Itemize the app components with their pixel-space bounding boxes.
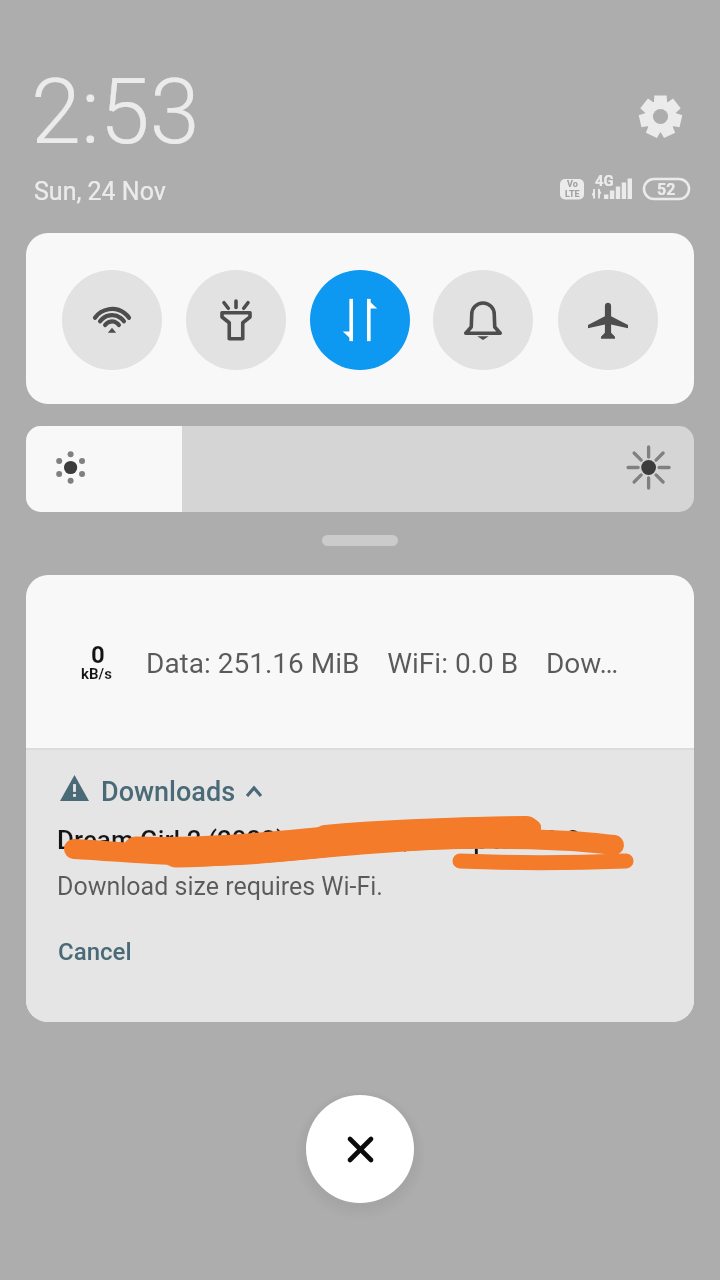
staticText: Sun, 24 Nov — [34, 177, 166, 206]
button[interactable]: Settings — [632, 88, 688, 144]
staticText: 52 — [657, 180, 676, 199]
staticText: Vo — [567, 179, 578, 190]
staticText: 4G — [595, 172, 614, 190]
button[interactable]: Network traffic — [26, 575, 694, 749]
staticText: 2:53 — [31, 60, 200, 165]
button[interactable]: Flashlight — [186, 270, 286, 370]
button[interactable]: Downloads — [58, 776, 261, 808]
staticText: Downloads — [101, 776, 236, 808]
staticText: Data: 251.16 MiB WiFi: 0.0 B Dow… — [146, 647, 619, 680]
button[interactable]: Brightness — [26, 426, 694, 512]
staticText: kB/s — [81, 665, 112, 683]
staticText: Dream Girl 2 (2023) 1080p HQ HDRip x26 2… — [57, 825, 619, 855]
button[interactable]: Wi-Fi — [62, 270, 162, 370]
staticText: Download size requires Wi-Fi. — [57, 872, 383, 901]
staticText: LTE — [565, 189, 580, 199]
staticText: 0 — [91, 641, 105, 669]
button[interactable]: Clear all notifications — [306, 1095, 414, 1203]
button[interactable]: Airplane mode — [558, 270, 658, 370]
staticText: Cancel — [58, 938, 132, 966]
button[interactable]: Do not disturb — [433, 270, 533, 370]
button[interactable]: Cancel — [49, 932, 141, 972]
button[interactable]: Mobile data — [310, 270, 410, 370]
